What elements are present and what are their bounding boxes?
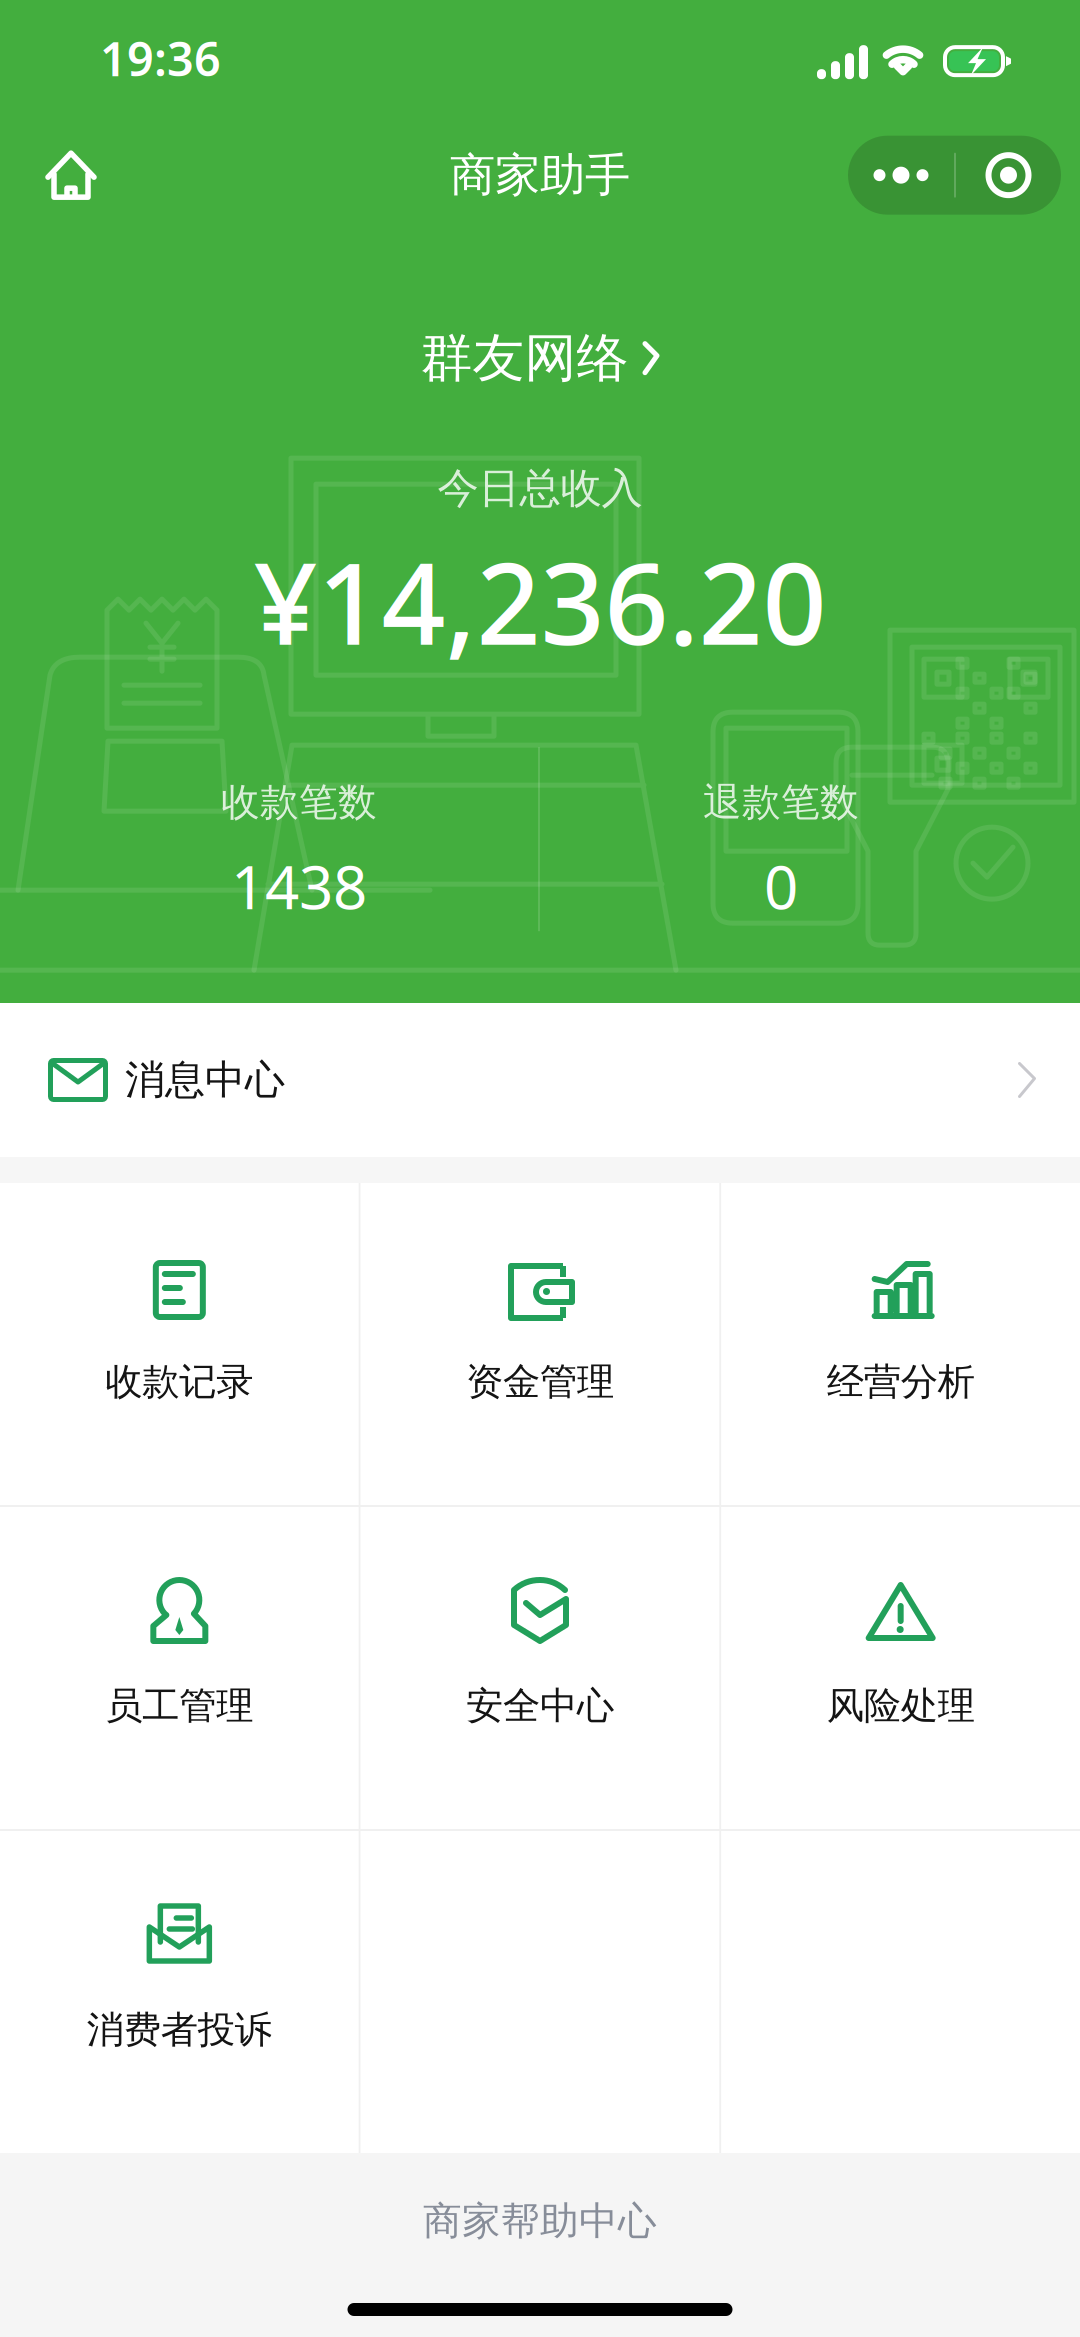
staticText: 退款笔数	[703, 779, 859, 826]
staticText: 0	[764, 846, 798, 926]
staticText: 安全中心	[466, 1683, 614, 1729]
staticText: ¥14,236.20	[253, 527, 826, 676]
button[interactable]: Close	[956, 136, 1061, 215]
button[interactable]: 群友网络	[420, 332, 659, 384]
staticText: 经营分析	[827, 1359, 975, 1405]
button[interactable]: More	[848, 136, 954, 215]
button[interactable]: 经营分析	[721, 1183, 1080, 1505]
staticText: 员工管理	[105, 1683, 253, 1729]
staticText: 收款笔数	[221, 779, 377, 826]
button[interactable]: 收款记录	[0, 1183, 359, 1505]
staticText: 商家助手	[450, 147, 630, 203]
button[interactable]: 安全中心	[361, 1507, 719, 1829]
staticText: 消费者投诉	[87, 2007, 272, 2053]
button[interactable]: 员工管理	[0, 1507, 359, 1829]
button[interactable]: Home	[16, 120, 126, 230]
staticText: 收款记录	[105, 1359, 253, 1405]
button[interactable]: 风险处理	[721, 1507, 1080, 1829]
button[interactable]: 消费者投诉	[0, 1831, 359, 2153]
staticText: 商家帮助中心	[423, 2197, 657, 2245]
staticText: 群友网络	[420, 326, 628, 390]
staticText: 今日总收入	[437, 463, 642, 514]
staticText: 风险处理	[827, 1683, 975, 1729]
button[interactable]: 消息中心	[0, 1003, 1080, 1157]
staticText: 资金管理	[466, 1359, 614, 1405]
staticText: 1438	[231, 846, 367, 926]
staticText: 19:36	[100, 27, 221, 89]
button[interactable]: 资金管理	[361, 1183, 719, 1505]
staticText: 消息中心	[125, 1055, 285, 1104]
button[interactable]: 商家帮助中心	[0, 2194, 1080, 2248]
